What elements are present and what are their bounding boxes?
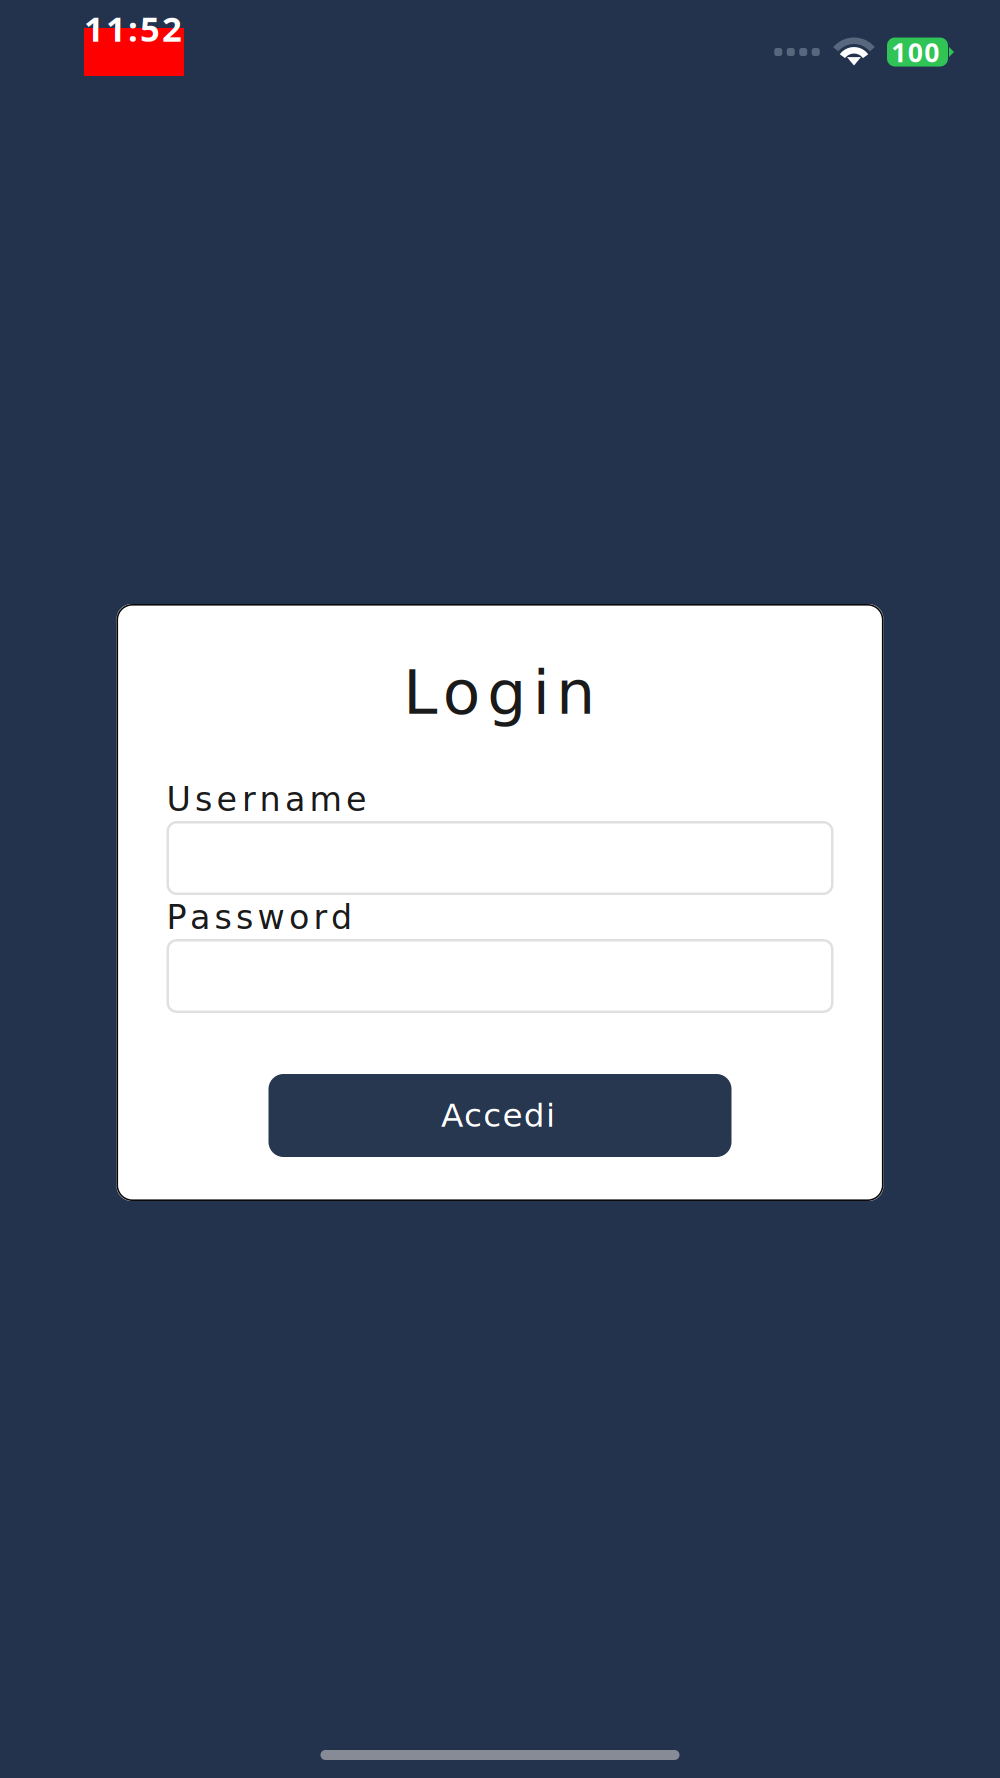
button[interactable]: Accedi	[268, 1074, 731, 1157]
staticText: 11:52	[84, 5, 182, 99]
staticText: Password	[166, 898, 359, 937]
staticText: 100	[891, 34, 944, 70]
staticText: Username	[166, 780, 374, 819]
staticText: Login	[403, 657, 608, 728]
staticText: Accedi	[441, 1096, 559, 1134]
